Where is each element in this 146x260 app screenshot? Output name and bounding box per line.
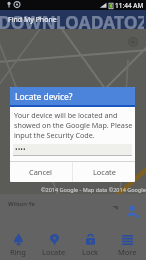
staticText: ©2014 Google - Map data ©2014 Google (41, 186, 146, 193)
button[interactable]: Lock (72, 228, 109, 260)
staticText: Ring (10, 247, 26, 257)
staticText: More (118, 247, 137, 257)
button[interactable]: Cancel (10, 162, 72, 182)
staticText: Locate (42, 247, 66, 257)
staticText: Wilson Ye (8, 200, 35, 208)
staticText: Find My Phone (8, 15, 57, 25)
button[interactable]: More (109, 228, 146, 260)
button[interactable]: Locate (36, 228, 72, 260)
staticText: Lock (82, 247, 99, 257)
button[interactable]: Add user (126, 205, 140, 219)
staticText: DOWNLOADATOZ (0, 10, 144, 29)
staticText: Locate device? (15, 91, 73, 103)
staticText: Locate (93, 167, 116, 177)
button[interactable]: •••• (13, 144, 132, 156)
button[interactable]: Ring (0, 228, 36, 260)
button[interactable]: Locate (73, 162, 135, 182)
staticText: Cancel (29, 167, 53, 177)
staticText: Your device will be located and showed o… (14, 110, 133, 140)
staticText: •••• (15, 145, 26, 155)
staticText: 11:44 AM (115, 1, 144, 10)
